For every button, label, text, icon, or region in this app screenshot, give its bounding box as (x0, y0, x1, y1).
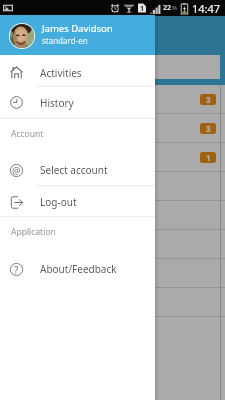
staticText: 3 (206, 123, 211, 134)
staticText: @ (12, 164, 21, 177)
button[interactable]: ? (0, 247, 155, 281)
staticText: Log-out (40, 195, 77, 209)
staticText: % (172, 4, 177, 12)
staticText: Application (11, 226, 56, 238)
button[interactable]: Log-out (0, 186, 155, 216)
staticText: standard-en (42, 35, 88, 46)
staticText: Account (11, 128, 44, 140)
other: Screenshot captured (3, 3, 13, 13)
button[interactable]: 3 (0, 114, 225, 143)
staticText: Select account (40, 163, 108, 177)
button[interactable]: 3 (0, 85, 225, 114)
button[interactable]: History (0, 87, 155, 118)
staticText: 14:47 (192, 1, 221, 16)
staticText: Activities (40, 66, 82, 80)
button[interactable] (0, 259, 225, 288)
staticText: 1 (206, 152, 211, 163)
staticText: James Davidson (42, 22, 113, 35)
button[interactable] (0, 172, 225, 201)
staticText: 1 (140, 4, 145, 14)
button[interactable]: @ (0, 151, 155, 185)
button[interactable]: James Davidson (0, 15, 155, 55)
staticText: About/Feedback (40, 262, 117, 276)
button[interactable]: Activities (0, 55, 155, 86)
staticText: History (40, 96, 74, 110)
button[interactable] (0, 288, 225, 317)
button[interactable] (0, 201, 225, 230)
button[interactable] (0, 230, 225, 259)
staticText: 22 (163, 3, 172, 13)
staticText: ? (14, 263, 19, 276)
button[interactable]: 1 (0, 143, 225, 172)
staticText: 3 (206, 94, 211, 105)
